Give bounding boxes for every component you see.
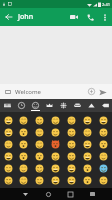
button[interactable]: Emoji [31,127,47,138]
button[interactable]: Travel [70,99,84,112]
button[interactable]: Emoji [31,151,47,162]
button[interactable]: More options [98,10,112,24]
staticText: Welcome [15,88,86,96]
button[interactable]: Emoji [16,151,31,162]
button[interactable]: Emoji [63,151,79,162]
button[interactable]: Emoji [79,151,95,162]
button[interactable]: Emoji [16,175,31,186]
button[interactable]: Emoji [31,114,47,126]
button[interactable]: Emoji [63,139,79,150]
button[interactable]: Emoji [79,175,95,186]
button[interactable]: Emoji [63,127,79,138]
button[interactable]: Emoji [1,175,16,186]
button[interactable]: Backspace [98,99,112,112]
button[interactable]: Emoji [63,175,79,186]
button[interactable]: Emoji [1,139,16,150]
button[interactable]: Emoji [31,175,47,186]
button[interactable]: Emoji [47,139,63,150]
button[interactable]: Emoji [1,114,16,126]
button[interactable]: Animals [42,99,56,112]
button[interactable]: Back [14,188,37,200]
button[interactable]: Emoji [79,127,95,138]
button[interactable]: Back [0,8,18,26]
button[interactable]: Emoji [31,163,47,174]
button[interactable]: Switch keyboard [81,188,103,200]
button[interactable]: Emoji [79,114,95,126]
button[interactable]: Emoji [47,151,63,162]
button[interactable]: Emoji [47,127,63,138]
button[interactable]: Emoji [95,163,111,174]
button[interactable]: Emoji [95,151,111,162]
staticText: John [18,12,66,22]
button[interactable]: Video call [66,9,82,25]
button[interactable]: Food [56,99,70,112]
button[interactable]: Emoji [95,175,111,186]
button[interactable]: Emoji [16,127,31,138]
button[interactable]: Home [37,188,59,200]
button[interactable]: Smileys [28,99,42,112]
button[interactable]: Recents [59,188,81,200]
button[interactable]: Emoji [16,114,31,126]
button[interactable]: Emoji [31,139,47,150]
button[interactable]: Emoji [95,114,111,126]
button[interactable]: Emoji [1,151,16,162]
button[interactable]: Emoji [16,139,31,150]
button[interactable]: Emoji [95,127,111,138]
button[interactable]: Send [97,86,109,98]
button[interactable]: Emoji [79,163,95,174]
button[interactable]: Emoji [1,127,16,138]
button[interactable]: Attach [86,86,97,97]
staticText: 2:41 [102,2,110,7]
button[interactable]: Emoji [47,163,63,174]
button[interactable]: Emoji [79,139,95,150]
button[interactable]: Emoji [16,163,31,174]
button[interactable]: Emoji [47,114,63,126]
button[interactable]: Objects [84,99,98,112]
button[interactable]: Emoji [1,163,16,174]
button[interactable]: Emoji [95,139,111,150]
button[interactable]: Emoji [63,163,79,174]
button[interactable]: SIM [3,87,13,97]
button[interactable]: Emoji [47,175,63,186]
button[interactable]: Keyboard [0,99,14,112]
button[interactable]: Call [82,9,98,25]
button[interactable]: Recent [14,99,28,112]
button[interactable]: Emoji [63,114,79,126]
